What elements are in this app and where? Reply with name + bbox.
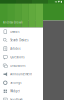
button[interactable]: Settings (0, 78, 43, 87)
staticText: Widget (10, 89, 20, 93)
staticText: Questions (10, 55, 24, 59)
staticText: Settings (10, 81, 21, 84)
button[interactable]: Discussions (0, 61, 43, 70)
button[interactable]: Questions (0, 53, 43, 61)
staticText: Discussions (10, 64, 25, 67)
button[interactable]: Feedback (0, 95, 43, 100)
button[interactable]: Devices (0, 27, 43, 36)
staticText: Articles (10, 47, 20, 50)
button[interactable]: Articles (0, 44, 43, 53)
staticText: Andrew Brown (3, 21, 23, 24)
staticText: Announcement (10, 72, 32, 76)
button[interactable]: Announcement (0, 70, 43, 78)
staticText: Feedback (10, 98, 22, 100)
staticText: Devices (10, 30, 19, 33)
button[interactable]: Search Devices (0, 36, 43, 44)
staticText: Search Devices (10, 38, 28, 42)
button[interactable]: Widget (0, 87, 43, 95)
